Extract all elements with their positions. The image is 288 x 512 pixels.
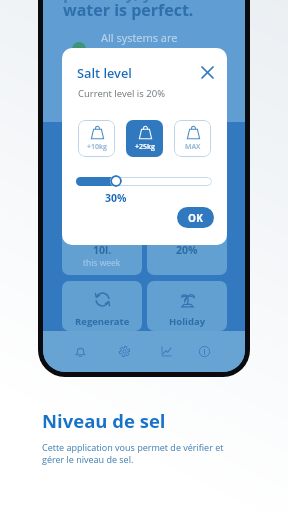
staticText: +10kg xyxy=(87,142,107,152)
button[interactable]: MAX xyxy=(174,120,211,157)
staticText: MAX xyxy=(185,142,201,152)
staticText: perfectly, your xyxy=(63,0,180,4)
staticText: 30% xyxy=(105,191,127,205)
button[interactable]: Holiday xyxy=(147,281,227,331)
staticText: +25kg xyxy=(135,142,155,152)
staticText: Regenerate xyxy=(75,315,130,328)
staticText: 10l. xyxy=(93,243,112,257)
button[interactable]: OK xyxy=(177,207,214,228)
staticText: Cette application vous permet de vérifie… xyxy=(42,441,226,466)
button[interactable]: Close xyxy=(196,61,218,83)
button[interactable]: 20% xyxy=(147,232,227,275)
staticText: Current level is 20% xyxy=(78,87,165,100)
button[interactable]: Settings xyxy=(107,334,141,368)
button[interactable]: Level slider xyxy=(110,175,122,187)
button[interactable]: +10kg xyxy=(78,120,115,157)
staticText: this week xyxy=(83,257,121,269)
button[interactable]: Statistics xyxy=(149,334,183,368)
staticText: Salt level xyxy=(77,64,132,81)
button[interactable]: +25kg xyxy=(126,120,163,157)
staticText: All systems are xyxy=(101,30,178,45)
button[interactable]: Regenerate xyxy=(62,281,142,331)
staticText: Niveau de sel xyxy=(42,408,166,433)
staticText: water is perfect. xyxy=(63,0,194,21)
button[interactable]: Information xyxy=(187,334,221,368)
button[interactable]: Notifications xyxy=(63,334,97,368)
staticText: Holiday xyxy=(169,315,206,328)
staticText: 20% xyxy=(176,243,198,257)
staticText: OK xyxy=(188,211,204,225)
button[interactable]: 10l. xyxy=(62,232,142,275)
